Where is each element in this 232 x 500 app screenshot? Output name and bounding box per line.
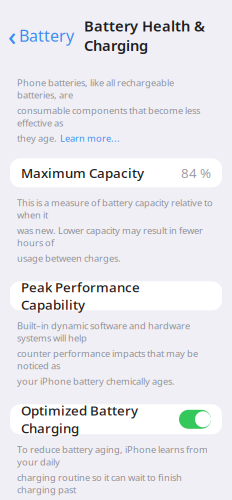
staticText: Maximum Capacity (21, 164, 144, 182)
staticText: consumable components that become less e… (17, 104, 200, 129)
button[interactable]: ‹ (0, 15, 74, 56)
staticText: Optimized Battery Charging (21, 402, 138, 437)
button[interactable]: Optimized Battery Charging (10, 404, 222, 434)
staticText: they age. (17, 132, 57, 144)
staticText: Built–in dynamic software and hardware s… (17, 319, 190, 344)
staticText: charging routine so it can wait to finis… (17, 471, 182, 496)
button[interactable]: Learn more... (60, 132, 120, 144)
staticText: your iPhone battery chemically ages. (17, 375, 175, 387)
staticText: To reduce battery aging, iPhone learns f… (17, 443, 208, 468)
staticText: Learn more... (60, 132, 120, 144)
button[interactable]: Maximum Capacity (10, 158, 222, 187)
staticText: usage between charges. (17, 252, 121, 264)
staticText: Battery Health & Charging (84, 16, 205, 55)
staticText: Phone batteries, like all rechargeable b… (17, 76, 174, 101)
staticText: 84 % (181, 164, 211, 182)
staticText: ‹ (8, 19, 16, 52)
button[interactable]: Peak Performance Capability (10, 281, 222, 310)
staticText: Peak Performance Capability (21, 278, 140, 313)
staticText: counter performance impacts that may be … (17, 347, 198, 372)
staticText: This is a measure of battery capacity re… (17, 196, 213, 221)
staticText: Battery (19, 25, 74, 46)
staticText: was new. Lower capacity may result in fe… (17, 224, 203, 249)
